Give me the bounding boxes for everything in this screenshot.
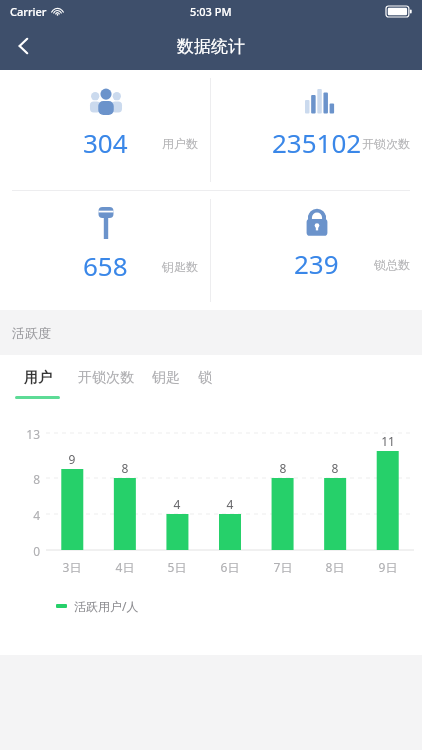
staticText: 5:03 PM [190, 4, 232, 19]
staticText: 锁总数 [374, 257, 410, 272]
staticText: 3日 [50, 559, 94, 575]
staticText: 活跃度 [12, 325, 51, 341]
button[interactable]: 658 [0, 191, 210, 283]
staticText: 8 [315, 460, 355, 476]
staticText: 活跃用户/人 [74, 598, 139, 614]
button[interactable]: 钥匙 [152, 369, 198, 399]
button[interactable]: Back [0, 22, 48, 70]
button[interactable]: 用户 [15, 369, 78, 399]
staticText: 7日 [261, 559, 305, 575]
staticText: 开锁次数 [362, 136, 410, 151]
staticText: 钥匙数 [162, 259, 198, 274]
staticText: 235102 [272, 125, 362, 160]
staticText: 9日 [366, 559, 410, 575]
staticText: 开锁次数 [78, 369, 134, 387]
staticText: 4 [210, 496, 250, 512]
staticText: 658 [83, 248, 128, 283]
staticText: 6日 [208, 559, 252, 575]
staticText: 0 [14, 543, 40, 559]
staticText: 用户数 [162, 136, 198, 151]
staticText: 11 [368, 433, 408, 449]
staticText: Carrier [10, 4, 47, 19]
staticText: 4日 [103, 559, 147, 575]
staticText: 5日 [155, 559, 199, 575]
button[interactable]: 239 [211, 191, 422, 281]
staticText: 8 [263, 460, 303, 476]
staticText: 13 [14, 426, 40, 442]
staticText: 8 [105, 460, 145, 476]
staticText: 9 [52, 451, 92, 467]
staticText: 锁 [198, 369, 212, 387]
staticText: 钥匙 [152, 369, 180, 387]
staticText: 4 [157, 496, 197, 512]
button[interactable]: 锁 [198, 369, 230, 399]
staticText: 239 [294, 246, 339, 281]
staticText: 8 [14, 471, 40, 487]
staticText: 用户 [24, 369, 52, 387]
staticText: 304 [83, 125, 128, 160]
button[interactable]: 235102 [211, 70, 422, 160]
staticText: 数据统计 [177, 36, 245, 57]
staticText: 4 [14, 507, 40, 523]
staticText: 8日 [313, 559, 357, 575]
button[interactable]: 开锁次数 [78, 369, 152, 399]
button[interactable]: 304 [0, 70, 210, 160]
